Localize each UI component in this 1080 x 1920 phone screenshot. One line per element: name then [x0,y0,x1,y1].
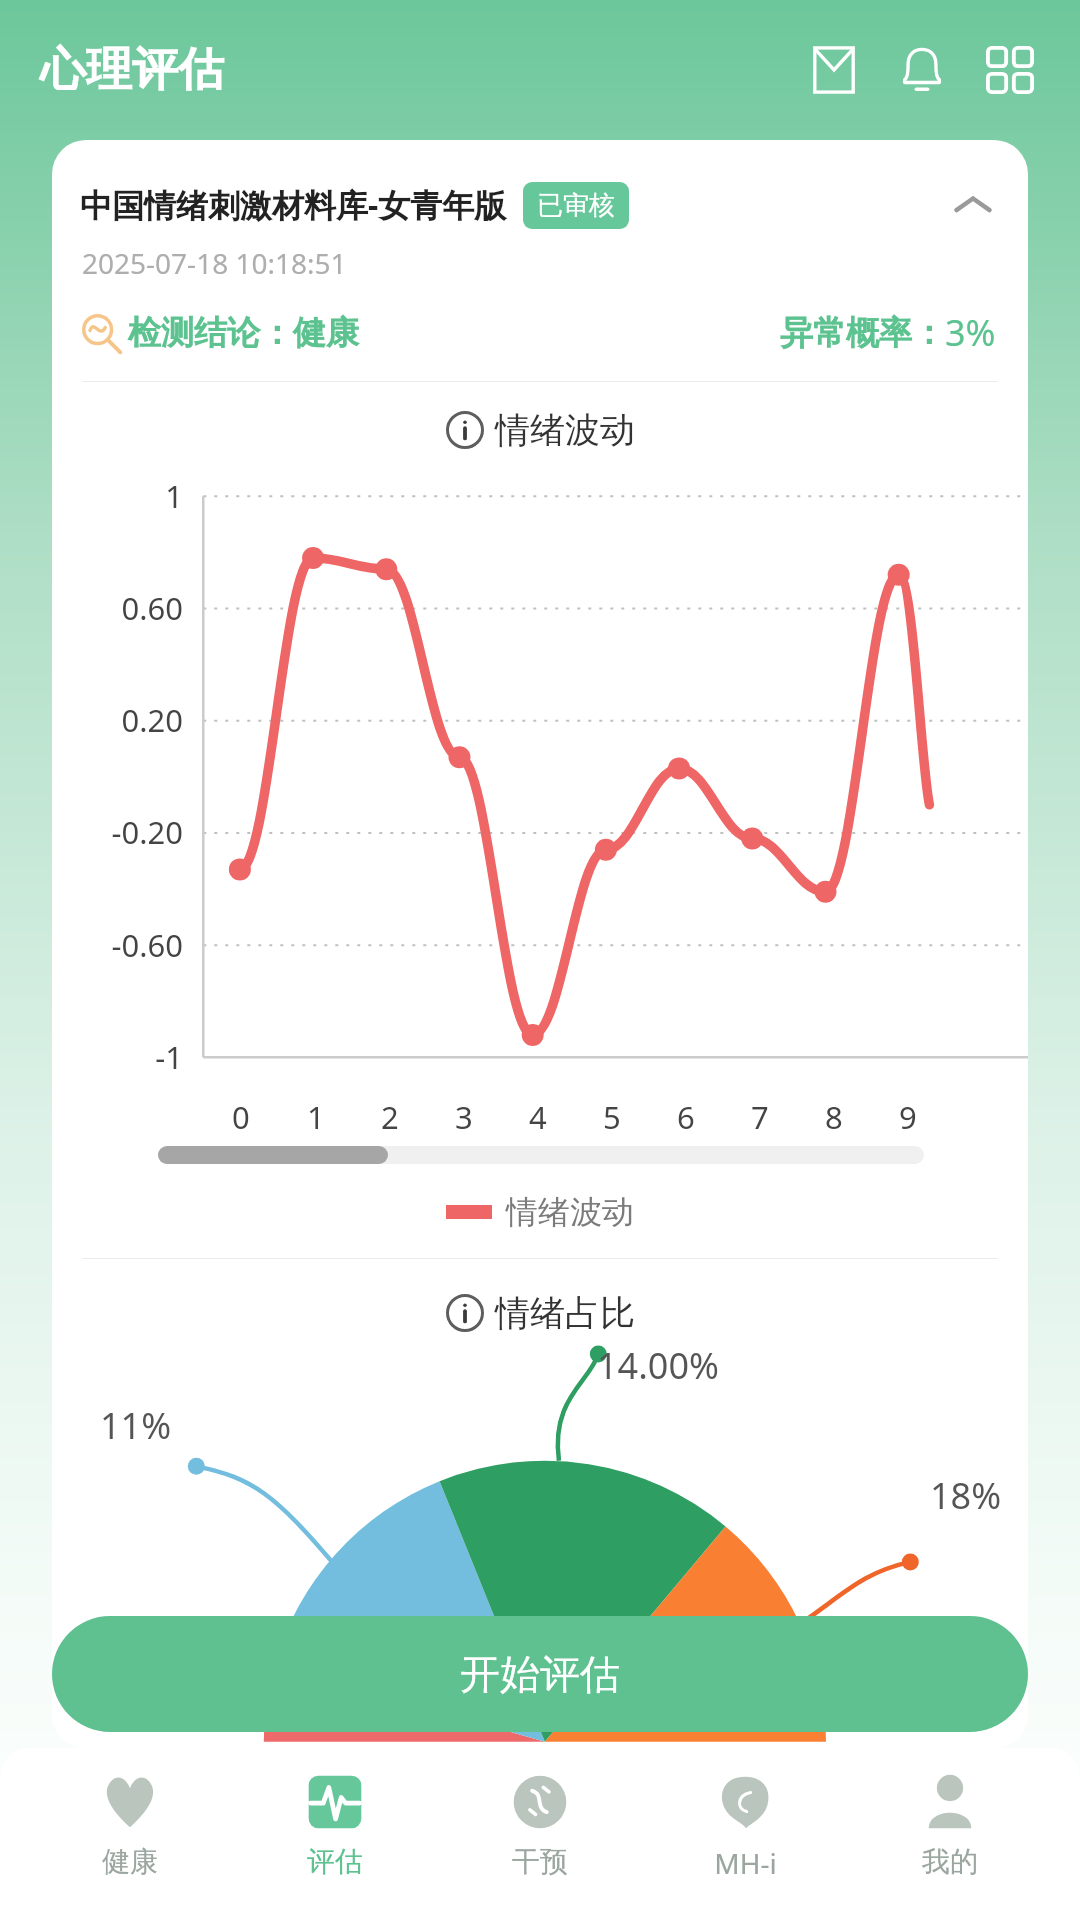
staticText: -0.60 [111,924,183,966]
staticText: 18% [930,1471,1002,1520]
staticText: -1 [155,1036,183,1078]
staticText: 11% [100,1401,172,1450]
button[interactable]: Messages [790,26,878,114]
button[interactable]: Notifications [878,26,966,114]
button[interactable]: Apps [966,26,1054,114]
staticText: 异常概率： [780,312,945,354]
staticText: 我的 [922,1844,978,1879]
staticText: 0.60 [121,587,183,629]
staticText: 1 [307,1096,325,1138]
staticText: 已审核 [537,189,615,222]
staticText: 检测结论：健康 [128,312,359,354]
staticText: 健康 [102,1844,158,1879]
button[interactable]: Collapse card [942,174,1004,236]
staticText: MH-i [714,1844,777,1882]
button[interactable]: 干预 [465,1774,615,1920]
staticText: 8 [825,1096,843,1138]
staticText: 心理评估 [40,41,224,99]
staticText: 0.20 [121,699,183,741]
staticText: 7 [751,1096,769,1138]
staticText: 3% [945,308,996,357]
staticText: 干预 [512,1844,568,1879]
button[interactable]: MH-i [670,1774,820,1920]
staticText: 情绪占比 [495,1291,635,1335]
staticText: 开始评估 [460,1649,620,1699]
staticText: -0.20 [111,811,183,853]
button[interactable]: 评估 [260,1774,410,1920]
staticText: 6 [677,1096,695,1138]
staticText: 1 [165,475,183,517]
button[interactable]: 健康 [55,1774,205,1920]
staticText: 评估 [307,1844,363,1879]
staticText: 情绪波动 [495,408,635,452]
staticText: 4 [529,1096,547,1138]
button[interactable]: 我的 [875,1774,1025,1920]
button[interactable]: 已审核 [523,182,629,229]
staticText: 中国情绪刺激材料库-女青年版 [80,183,507,227]
staticText: 9 [899,1096,917,1138]
staticText: 3 [455,1096,473,1138]
staticText: 情绪波动 [506,1192,634,1232]
staticText: 2 [381,1096,399,1138]
button[interactable]: 开始评估 [52,1616,1028,1732]
staticText: 2025-07-18 10:18:51 [82,244,347,282]
staticText: 5 [603,1096,621,1138]
staticText: 0 [232,1096,250,1138]
staticText: 14.00% [597,1341,719,1390]
